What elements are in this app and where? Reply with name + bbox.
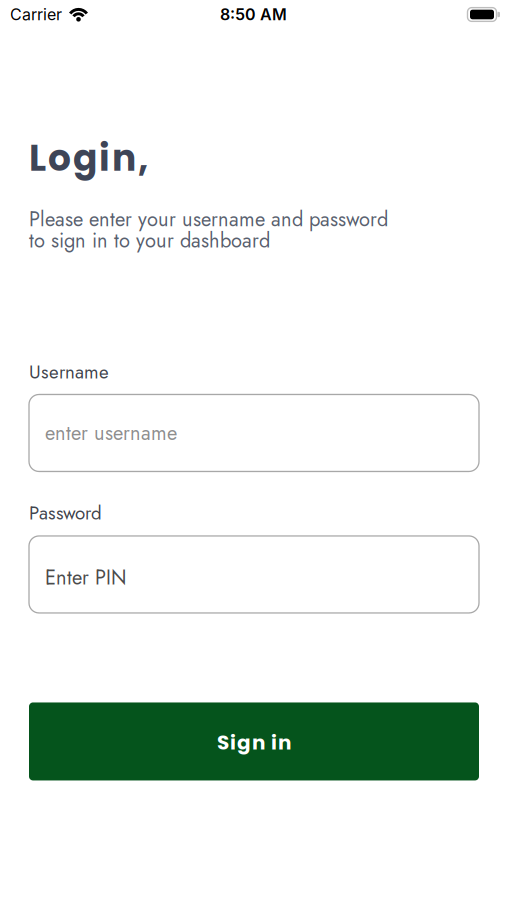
staticText: Enter PIN	[45, 563, 127, 592]
textField[interactable]: enter username	[29, 394, 479, 471]
staticText: Password	[29, 499, 102, 526]
staticText: enter username	[45, 418, 177, 447]
textField[interactable]: Enter PIN	[29, 536, 479, 613]
staticText: Username	[29, 358, 109, 385]
staticText: Sign in	[217, 728, 291, 756]
staticText: Please enter your username and password …	[29, 205, 388, 255]
staticText: Carrier	[10, 5, 62, 24]
staticText: Login,	[29, 133, 148, 183]
staticText: 8:50 AM	[220, 5, 287, 24]
button[interactable]: Sign in	[29, 702, 479, 780]
